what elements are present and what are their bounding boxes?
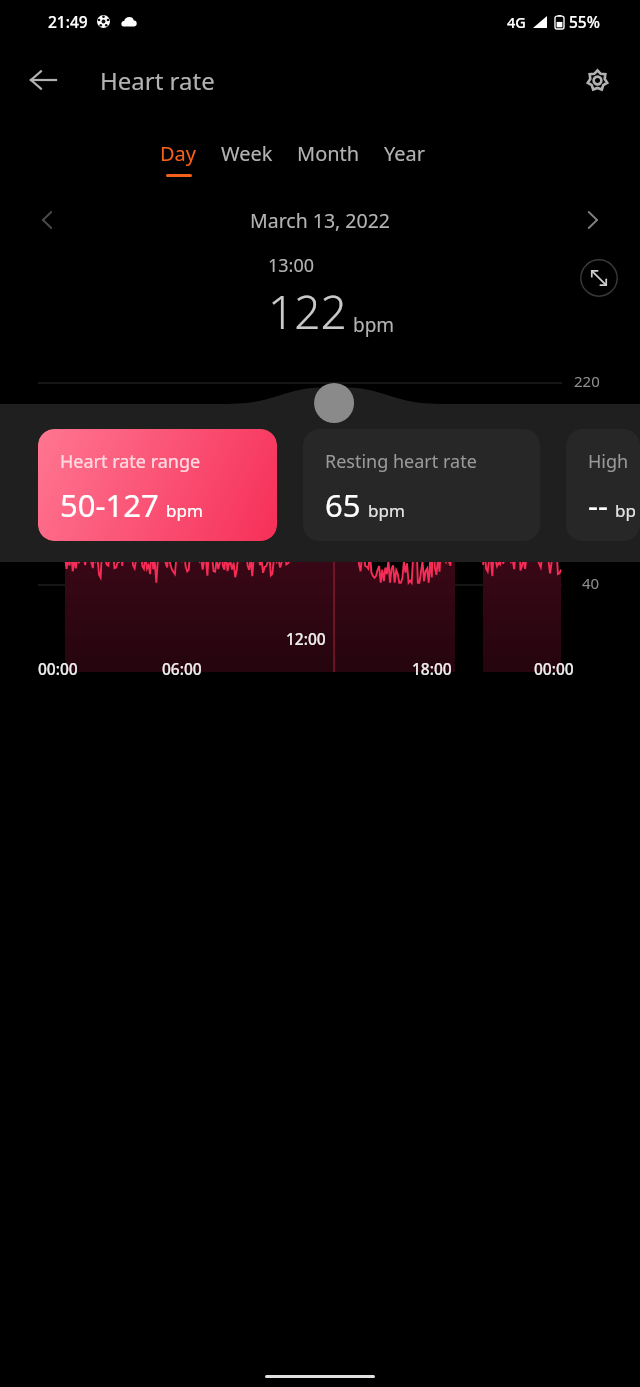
button[interactable]: Day (148, 140, 209, 177)
staticText: 85 (582, 527, 600, 547)
staticText: Heart rate range (60, 449, 201, 474)
staticText: 175 (574, 422, 600, 442)
staticText: -- (588, 484, 608, 526)
staticText: 220 (574, 371, 600, 391)
staticText: Week (221, 140, 273, 167)
staticText: 13:00 (268, 253, 315, 278)
button[interactable]: Settings (574, 57, 620, 103)
staticText: Month (297, 140, 360, 167)
staticText: Heart rate (100, 64, 215, 97)
button[interactable]: Year (372, 140, 438, 174)
button[interactable]: Next day (572, 200, 612, 240)
staticText: 55% (569, 11, 600, 32)
staticText: March 13, 2022 (250, 207, 390, 234)
staticText: bpm (166, 499, 203, 522)
staticText: bpm (615, 499, 640, 522)
staticText: 65 (325, 484, 361, 526)
button[interactable]: Week (209, 140, 285, 174)
button[interactable]: Back (20, 57, 66, 103)
staticText: 06:00 (162, 658, 202, 679)
button[interactable]: Previous day (28, 200, 68, 240)
staticText: bpm (368, 499, 405, 522)
button[interactable]: High (566, 429, 640, 541)
staticText: 122 (268, 280, 347, 343)
staticText: 18:00 (412, 658, 452, 679)
staticText: Day (160, 140, 197, 167)
staticText: Resting heart rate (325, 449, 477, 474)
staticText: Year (384, 140, 426, 167)
staticText: 00:00 (534, 658, 574, 679)
button[interactable]: Resting heart rate (303, 429, 540, 541)
button[interactable]: Expand chart (580, 259, 618, 297)
staticText: 40 (582, 573, 600, 593)
button[interactable]: Month (285, 140, 372, 174)
staticText: 12:00 (286, 628, 326, 649)
staticText: 50-127 (60, 484, 159, 526)
staticText: 21:49 (48, 11, 88, 32)
staticText: 4G (507, 12, 526, 32)
button[interactable]: Heart rate range (38, 429, 277, 541)
staticText: bpm (353, 312, 395, 338)
staticText: 00:00 (38, 658, 78, 679)
staticText: High (588, 449, 629, 474)
